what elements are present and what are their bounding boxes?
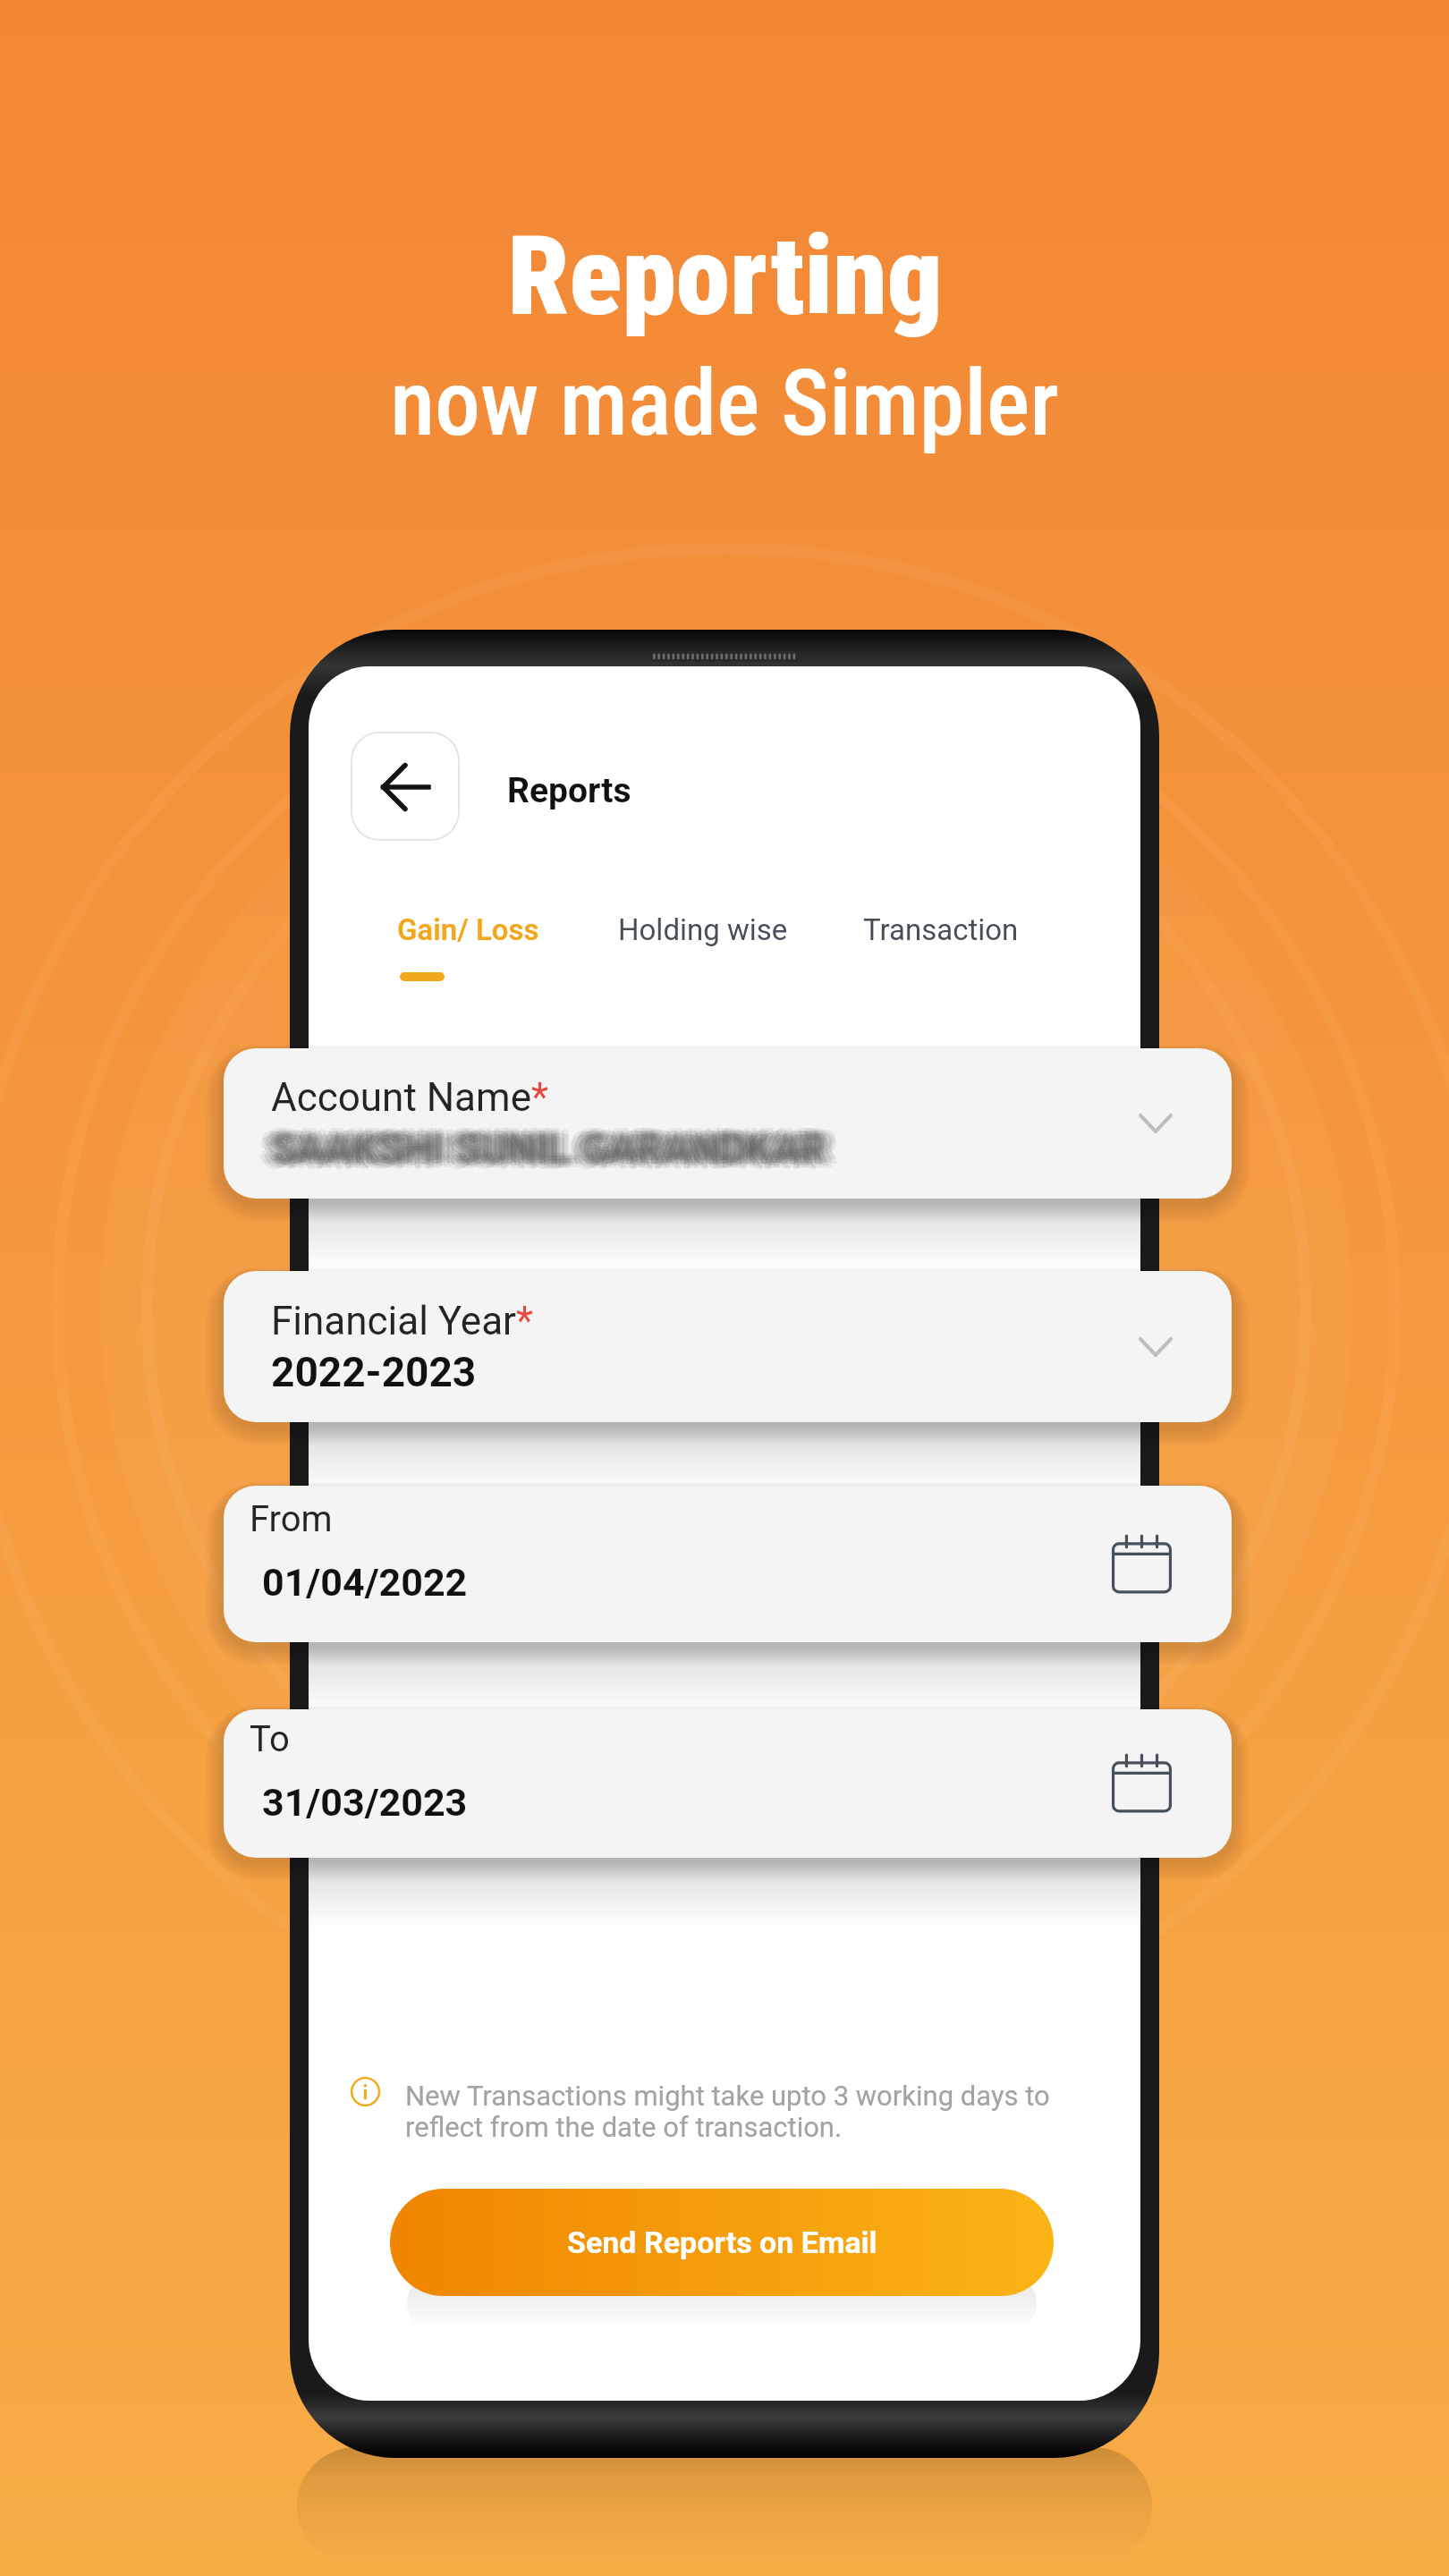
staticText: SAAKSHI SUNIL GARANDKAR (272, 1130, 827, 1178)
staticText: Account Name* (271, 1074, 548, 1121)
staticText: SAAKSHI SUNIL GARANDKAR (263, 1125, 818, 1174)
button[interactable]: Account Name* (224, 1048, 1232, 1199)
staticText: SAAKSHI SUNIL GARANDKAR (283, 1121, 838, 1169)
button[interactable]: Transaction (863, 912, 1019, 972)
staticText: SAAKSHI SUNIL GARANDKAR (274, 1123, 829, 1172)
staticText: SAAKSHI SUNIL GARANDKAR (284, 1125, 839, 1174)
button[interactable]: To (224, 1709, 1232, 1858)
staticText: SAAKSHI SUNIL GARANDKAR (268, 1126, 824, 1174)
staticText: SAAKSHI SUNIL GARANDKAR (274, 1124, 829, 1173)
staticText: now made Simpler (390, 350, 1059, 457)
staticText: From (250, 1498, 333, 1540)
button[interactable]: Financial Year* (224, 1271, 1232, 1422)
staticText: Holding wise (618, 912, 788, 947)
staticText: Send Reports on Email (567, 2224, 877, 2260)
staticText: 01/04/2022 (262, 1560, 468, 1605)
staticText: SAAKSHI SUNIL GARANDKAR (258, 1126, 814, 1174)
staticText: SAAKSHI SUNIL GARANDKAR (279, 1129, 835, 1177)
staticText: Transaction (863, 912, 1019, 947)
staticText: SAAKSHI SUNIL GARANDKAR (274, 1119, 829, 1167)
staticText: 31/03/2023 (262, 1780, 468, 1825)
staticText: SAAKSHI SUNIL GARANDKAR (268, 1125, 824, 1174)
button[interactable]: Send Reports on Email (390, 2189, 1054, 2296)
staticText: SAAKSHI SUNIL GARANDKAR (272, 1122, 827, 1170)
button[interactable]: From (224, 1486, 1232, 1642)
staticText: New Transactions might take upto 3 worki… (405, 2080, 1069, 2143)
staticText: 2022-2023 (271, 1348, 477, 1396)
button[interactable]: Gain/ Loss (397, 912, 539, 981)
staticText: SAAKSHI SUNIL GARANDKAR (268, 1122, 824, 1170)
staticText: SAAKSHI SUNIL GARANDKAR (271, 1124, 826, 1173)
staticText: To (250, 1718, 290, 1760)
staticText: Reports (507, 770, 631, 811)
staticText: SAAKSHI SUNIL GARANDKAR (267, 1119, 822, 1167)
staticText: SAAKSHI SUNIL GARANDKAR (275, 1127, 831, 1175)
button[interactable]: Holding wise (618, 912, 788, 972)
staticText: Financial Year* (271, 1298, 533, 1344)
staticText: SAAKSHI SUNIL GARANDKAR (272, 1127, 827, 1175)
button[interactable]: Back (351, 732, 460, 841)
staticText: Gain/ Loss (397, 912, 539, 947)
staticText: SAAKSHI SUNIL GARANDKAR (262, 1131, 818, 1179)
staticText: SAAKSHI SUNIL GARANDKAR (266, 1129, 821, 1177)
staticText: SAAKSHI SUNIL GARANDKAR (279, 1124, 835, 1173)
staticText: SAAKSHI SUNIL GARANDKAR (260, 1122, 816, 1170)
staticText: Reporting (507, 213, 943, 341)
staticText: SAAKSHI SUNIL GARANDKAR (265, 1123, 820, 1171)
staticText: SAAKSHI SUNIL GARANDKAR (278, 1122, 834, 1170)
